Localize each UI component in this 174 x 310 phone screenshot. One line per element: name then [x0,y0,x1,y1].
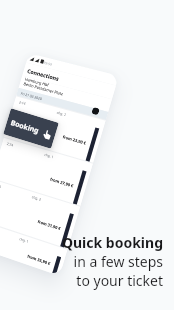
staticText: from 27,90 € [49,177,74,189]
button[interactable]: from 35,90 € [0,229,65,276]
button[interactable]: Booking [3,108,59,149]
button[interactable]: from 27,90 € [0,146,90,206]
button[interactable]: from 23,90 € [4,105,103,163]
staticText: 2:24 [6,141,14,147]
staticText: chg. 2 [31,194,42,202]
staticText: Connections [27,67,61,82]
staticText: 2:34 [0,182,2,189]
staticText: to your ticket [76,271,163,290]
staticText: Booking [9,118,40,136]
staticText: Berlin Potsdamer Platz [23,81,64,96]
button[interactable]: Start [91,107,100,115]
staticText: chg. 2 [56,110,67,117]
staticText: 2:14 [19,99,26,106]
staticText: chg. 1 [44,152,54,159]
staticText: 99:99 [43,60,53,67]
staticText: Fri 21.02.2020 [20,91,43,101]
staticText: chg. 1 [19,236,29,244]
button[interactable]: from 31,90 € [0,188,78,249]
staticText: Quick booking [61,233,163,252]
staticText: Hamburg Hbf [24,76,50,87]
staticText: from 31,90 € [37,219,62,231]
staticText: from 23,90 € [62,134,87,146]
staticText: in a few steps [73,252,163,271]
button[interactable]: Connections [22,62,116,99]
staticText: from 35,90 € [27,254,52,266]
